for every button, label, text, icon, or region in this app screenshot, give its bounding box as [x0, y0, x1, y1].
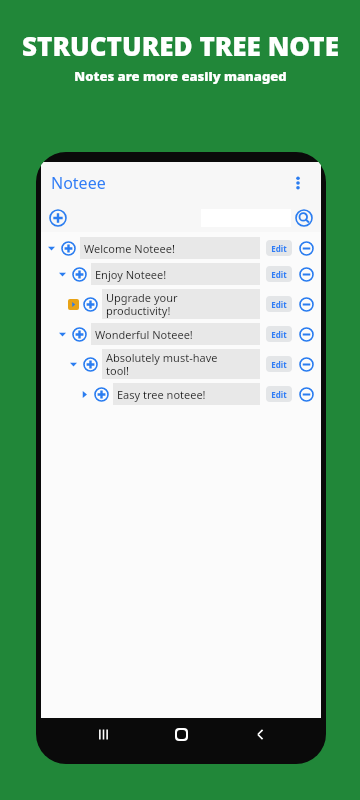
- button[interactable]: Remove: [297, 239, 315, 257]
- button[interactable]: More options: [285, 170, 311, 196]
- staticText: Absolutely must-have tool!: [106, 350, 218, 378]
- staticText: Enjoy Noteee!: [95, 267, 167, 282]
- staticText: Edit: [271, 243, 287, 254]
- button[interactable]: Remove: [297, 325, 315, 343]
- staticText: Easy tree noteee!: [117, 387, 206, 402]
- button[interactable]: Back: [243, 718, 277, 750]
- button[interactable]: Edit: [266, 266, 292, 282]
- staticText: Edit: [271, 389, 287, 400]
- button[interactable]: Collapse: [41, 347, 321, 381]
- button[interactable]: Search: [293, 207, 315, 229]
- button[interactable]: Home: [164, 718, 198, 750]
- staticText: STRUCTURED TREE NOTE: [22, 28, 339, 63]
- button[interactable]: Collapse: [41, 235, 321, 261]
- button[interactable]: Expand: [41, 381, 321, 407]
- staticText: Noteee: [51, 172, 106, 194]
- button[interactable]: Collapse: [45, 242, 58, 255]
- button[interactable]: Expand: [67, 298, 80, 311]
- staticText: Notes are more easily managed: [74, 67, 287, 85]
- button[interactable]: Expand: [41, 287, 321, 321]
- button[interactable]: Edit: [266, 386, 292, 402]
- staticText: Edit: [271, 329, 287, 340]
- button[interactable]: Add note: [47, 207, 69, 229]
- button[interactable]: Remove: [297, 355, 315, 373]
- staticText: Welcome Noteee!: [84, 241, 175, 256]
- button[interactable]: Collapse: [41, 261, 321, 287]
- button[interactable]: Collapse: [56, 268, 69, 281]
- staticText: Wonderful Noteee!: [95, 327, 193, 342]
- button[interactable]: Edit: [266, 296, 292, 312]
- button[interactable]: Remove: [297, 295, 315, 313]
- button[interactable]: Edit: [266, 356, 292, 372]
- button[interactable]: Remove: [297, 385, 315, 403]
- button[interactable]: Collapse: [67, 358, 80, 371]
- button[interactable]: Collapse: [41, 321, 321, 347]
- staticText: Edit: [271, 299, 287, 310]
- button[interactable]: Recents: [86, 718, 120, 750]
- staticText: Edit: [271, 359, 287, 370]
- button[interactable]: Edit: [266, 326, 292, 342]
- button[interactable]: Collapse: [56, 328, 69, 341]
- staticText: Edit: [271, 269, 287, 280]
- button[interactable]: Remove: [297, 265, 315, 283]
- button[interactable]: Edit: [266, 240, 292, 256]
- staticText: Upgrade your productivity!: [106, 290, 178, 318]
- button[interactable]: Expand: [78, 388, 91, 401]
